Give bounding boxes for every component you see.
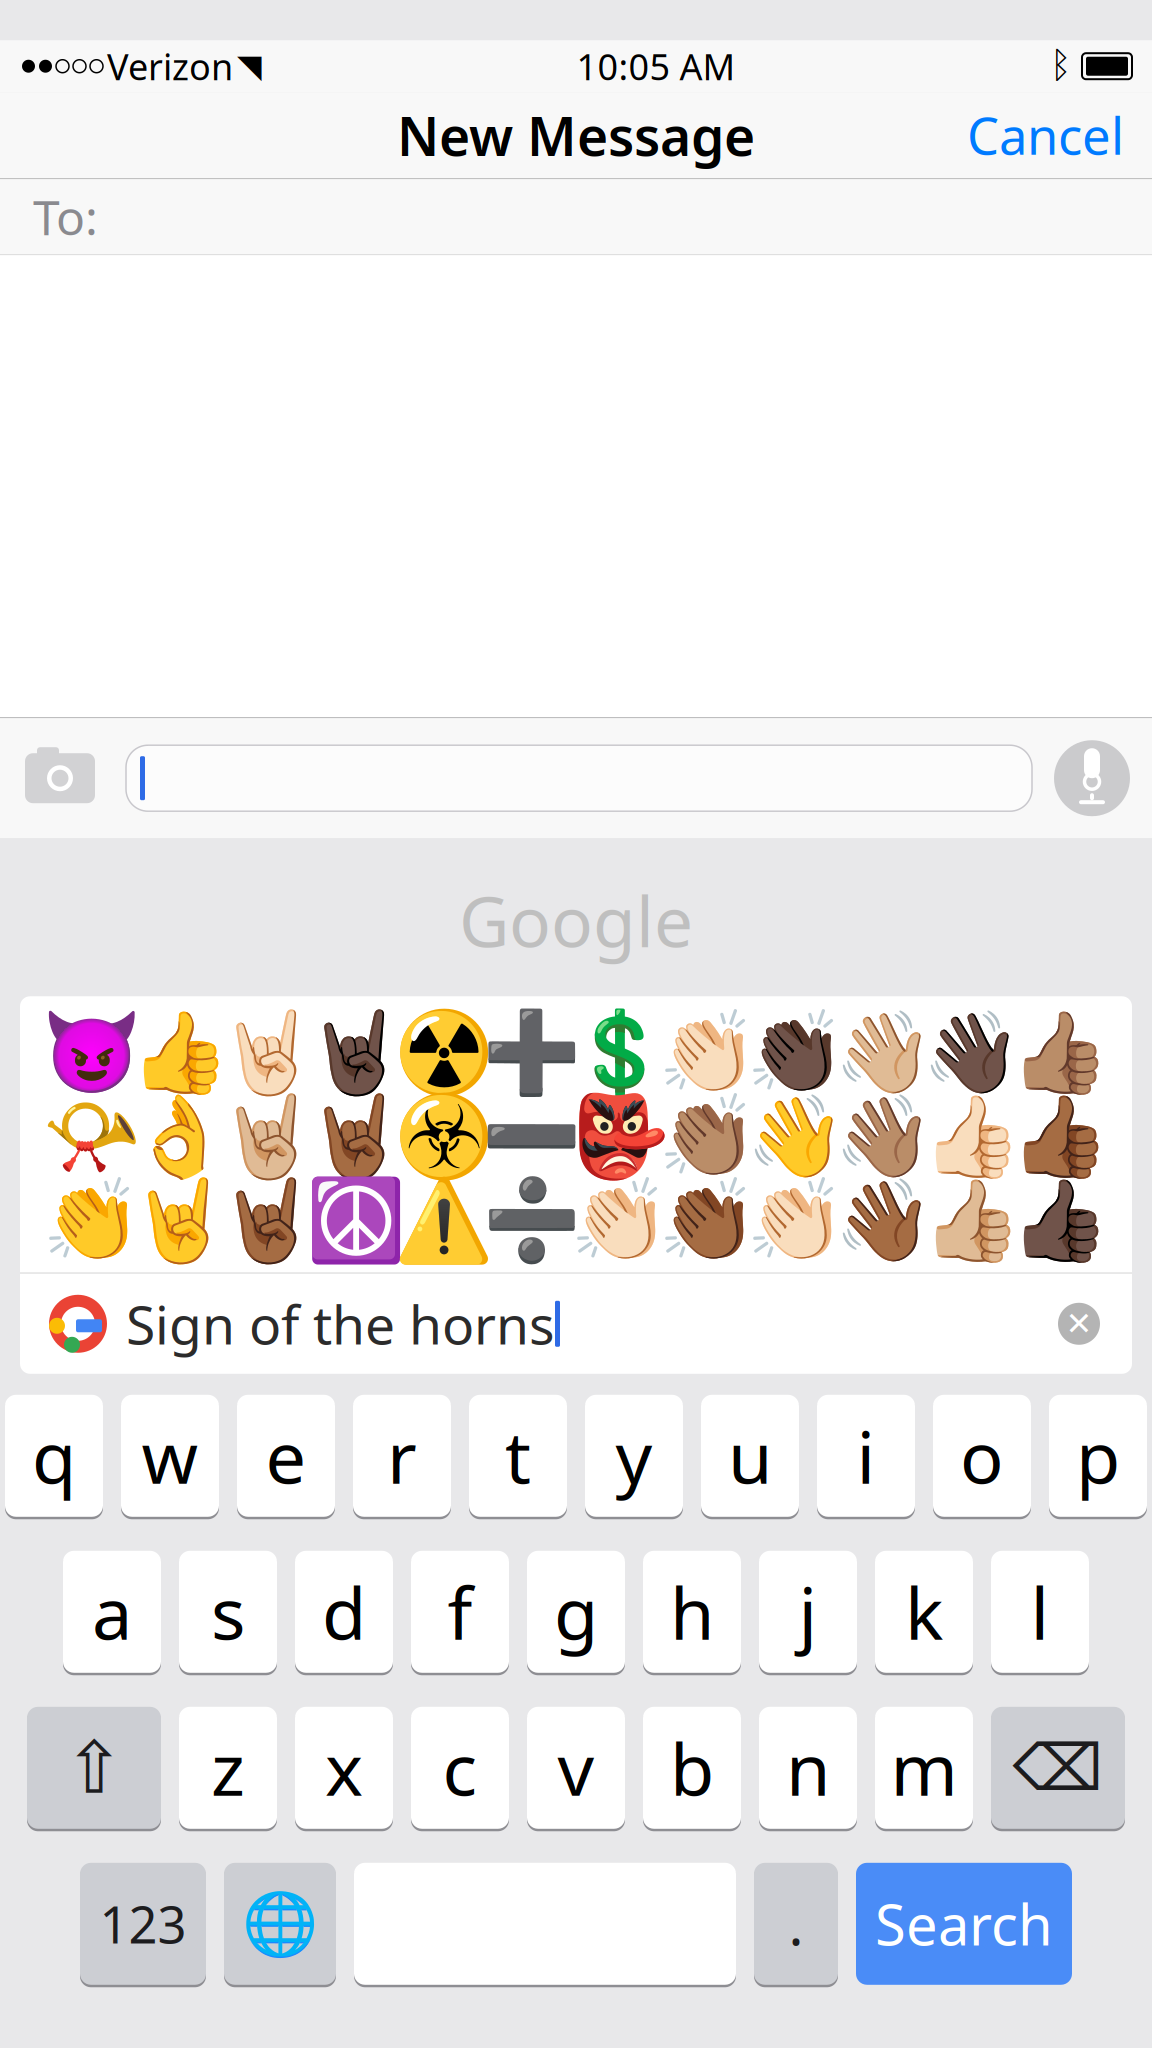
button[interactable]: n [759,1704,857,1832]
button[interactable]: p [1049,1392,1147,1520]
button[interactable]: Emoji [224,1094,312,1178]
button[interactable]: Emoji [1016,1178,1104,1262]
staticText: c [442,1720,477,1816]
button[interactable]: Dictate [1054,740,1130,816]
button[interactable]: Emoji [752,1010,840,1094]
button[interactable]: Emoji [224,1178,312,1262]
button[interactable]: Numbers [80,1860,206,1988]
button[interactable]: Emoji [136,1094,224,1178]
button[interactable]: d [295,1548,393,1676]
button[interactable]: s [179,1548,277,1676]
button[interactable]: m [875,1704,973,1832]
button[interactable]: Emoji [48,1094,136,1178]
button[interactable]: Shift [27,1704,161,1832]
button[interactable]: Emoji [488,1094,576,1178]
staticText: d [322,1564,366,1660]
button[interactable]: Emoji [664,1094,752,1178]
button[interactable]: Emoji [752,1178,840,1262]
button[interactable]: Cancel [967,92,1152,179]
button[interactable]: g [527,1548,625,1676]
button[interactable]: Delete [991,1704,1125,1832]
button[interactable]: e [237,1392,335,1520]
button[interactable]: Emoji [312,1010,400,1094]
button[interactable]: Emoji [664,1178,752,1262]
button[interactable]: c [411,1704,509,1832]
staticText: ➖ [482,1091,582,1182]
button[interactable]: Emoji [1016,1010,1104,1094]
staticText: New Message [397,100,755,171]
button[interactable]: Emoji [400,1010,488,1094]
button[interactable]: h [643,1548,741,1676]
button[interactable]: Emoji [312,1094,400,1178]
button[interactable]: Sign of the horns [20,1274,1132,1374]
button[interactable]: Next keyboard [224,1860,336,1988]
button[interactable]: Emoji [840,1094,928,1178]
button[interactable]: Emoji [400,1178,488,1262]
button[interactable]: space [354,1860,736,1988]
button[interactable]: b [643,1704,741,1832]
button[interactable]: Emoji [488,1178,576,1262]
button[interactable]: a [63,1548,161,1676]
button[interactable]: Emoji [840,1178,928,1262]
button[interactable]: Take photo [22,748,98,808]
button[interactable]: Emoji [48,1178,136,1262]
staticText: 🌐 [242,1889,318,1959]
staticText: f [447,1564,472,1660]
staticText: 👺 [570,1091,670,1182]
staticText: To: [33,185,98,248]
button[interactable]: u [701,1392,799,1520]
button[interactable]: i [817,1392,915,1520]
button[interactable]: Emoji [48,1010,136,1094]
button[interactable]: x [295,1704,393,1832]
button[interactable]: Emoji [312,1178,400,1262]
staticText: ☮️ [306,1175,406,1266]
button[interactable]: Search [856,1860,1072,1988]
button[interactable]: t [469,1392,567,1520]
button[interactable]: z [179,1704,277,1832]
staticText: h [670,1564,714,1660]
button[interactable]: Emoji [576,1178,664,1262]
button[interactable]: j [759,1548,857,1676]
button[interactable]: v [527,1704,625,1832]
button[interactable]: Emoji [928,1094,1016,1178]
button[interactable]: Emoji [576,1010,664,1094]
staticText: ☣️ [394,1091,494,1182]
button[interactable]: Emoji [1016,1094,1104,1178]
staticText: ✕ [1065,1306,1092,1342]
staticText: 👋🏿 [922,1007,1022,1098]
staticText: 👏🏻 [570,1175,670,1266]
staticText: 10:05 AM [576,42,735,90]
staticText: ➕ [482,1007,582,1098]
staticText: 👏🏾 [658,1175,758,1266]
button[interactable]: k [875,1548,973,1676]
staticText: 🤘🏾 [218,1175,318,1266]
button[interactable]: Emoji [136,1010,224,1094]
button[interactable]: Period [754,1860,838,1988]
button[interactable]: q [5,1392,103,1520]
staticText: 👋🏼 [834,1007,934,1098]
button[interactable]: Emoji [928,1010,1016,1094]
staticText: . [788,1887,803,1961]
button[interactable]: Emoji [136,1178,224,1262]
staticText: 🤘🏼 [218,1091,318,1182]
staticText: s [211,1564,245,1660]
button[interactable]: w [121,1392,219,1520]
staticText: 👍🏼 [922,1175,1022,1266]
staticText: Cancel [967,102,1124,169]
button[interactable]: f [411,1548,509,1676]
button[interactable]: Emoji [840,1010,928,1094]
staticText: j [798,1564,817,1660]
button[interactable]: o [933,1392,1031,1520]
button[interactable]: Emoji [224,1010,312,1094]
staticText: v [557,1720,594,1816]
button[interactable]: Emoji [928,1178,1016,1262]
button[interactable]: Emoji [752,1094,840,1178]
button[interactable]: Emoji [664,1010,752,1094]
button[interactable]: l [991,1548,1089,1676]
button[interactable]: Emoji [576,1094,664,1178]
button[interactable]: y [585,1392,683,1520]
button[interactable]: r [353,1392,451,1520]
staticText: ☢️ [394,1007,494,1098]
button[interactable]: Emoji [400,1094,488,1178]
button[interactable]: Emoji [488,1010,576,1094]
